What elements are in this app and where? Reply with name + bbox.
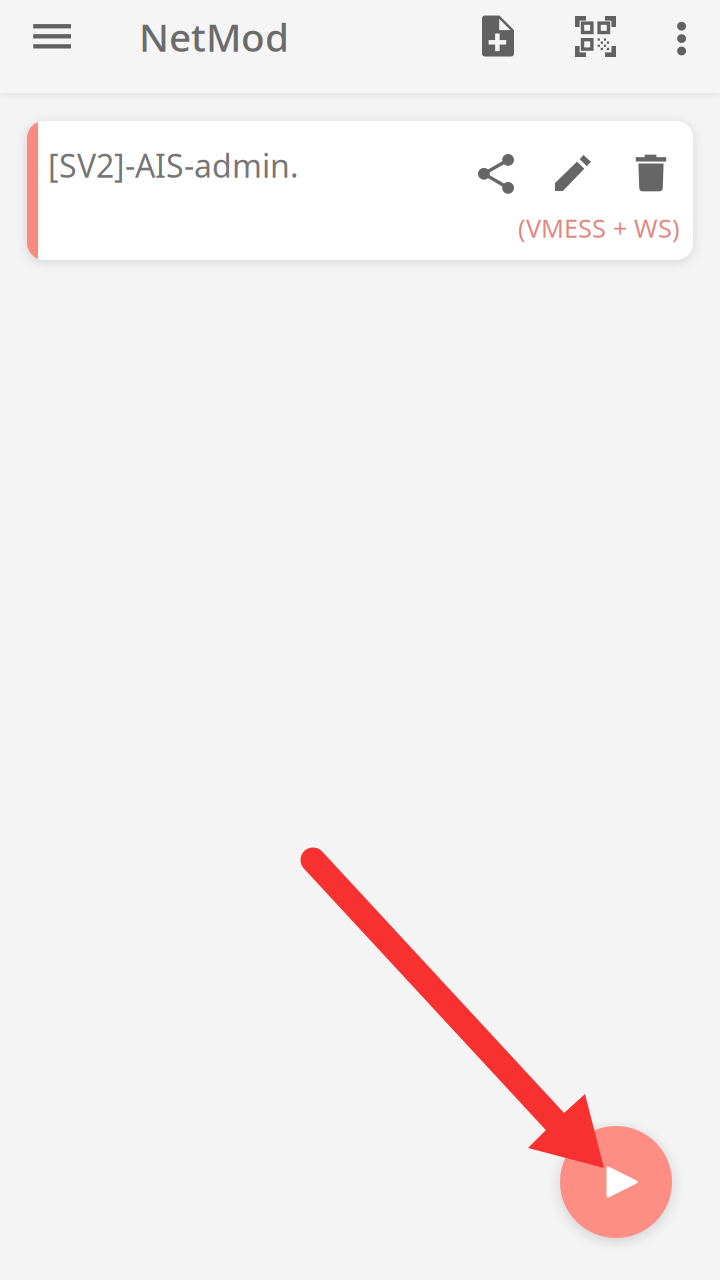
button[interactable]: Edit (545, 145, 601, 201)
button[interactable]: [SV2]-AIS-admin. (27, 121, 693, 260)
staticText: (VMESS + WS) (518, 211, 680, 245)
staticText: [SV2]-AIS-admin. (48, 144, 299, 186)
button[interactable]: Share (468, 146, 524, 202)
button[interactable]: Connect (560, 1126, 672, 1238)
button[interactable]: Menu (17, 1, 87, 71)
staticText: NetMod (139, 11, 289, 62)
button[interactable]: Delete (623, 145, 679, 201)
button[interactable]: More options (652, 4, 712, 74)
button[interactable]: New configuration (462, 0, 534, 72)
button[interactable]: Scan QR code (559, 0, 631, 72)
